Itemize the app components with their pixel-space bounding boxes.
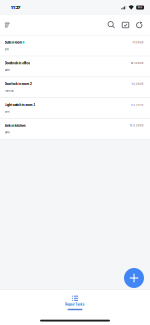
button[interactable]: Doorknob in office [0,56,150,77]
button[interactable]: Sort [1,15,14,35]
staticText: 18.1.2025 [131,61,144,64]
staticText: Repair Tasks [65,303,85,306]
button[interactable]: Sink in kitchen [0,119,150,140]
button[interactable]: Refresh [132,15,146,35]
button[interactable]: Door lock in room 2 [0,77,150,98]
button[interactable]: Select [118,15,132,35]
button[interactable]: Light switch in room 3 [0,98,150,119]
staticText: 7.1.2025 [132,41,144,44]
staticText: Sink in kitchen [5,124,26,127]
staticText: Sink in kitchen [5,124,26,127]
staticText: Jane [5,110,10,113]
staticText: Jim [5,48,8,51]
staticText: 11:27 [11,5,20,10]
staticText: Jane [5,68,10,71]
staticText: 11:27 [11,5,20,10]
staticText: Bulb in room 1 [5,41,24,44]
staticText: 18.1.2025 [131,61,144,64]
staticText: 13.2.2025 [130,124,144,127]
staticText: 1.2.2025 [131,82,144,85]
staticText: Light switch in room 3 [5,103,35,107]
staticText: 13.2.2025 [130,124,144,127]
staticText: Doorknob in office [5,61,30,65]
staticText: Bulb in room 1 [5,41,24,44]
staticText: Jane [5,68,10,71]
staticText: Door lock in room 2 [5,82,32,86]
staticText: Hannah [5,89,14,92]
button[interactable]: Add task [124,268,144,288]
button[interactable]: Repair Tasks [0,296,150,310]
staticText: Hannah [5,89,14,92]
staticText: Jane [5,110,10,113]
staticText: 11.2.2025 [131,103,144,106]
staticText: 7.1.2025 [132,41,144,44]
button[interactable]: Search [104,15,118,35]
staticText: Jane [5,131,10,134]
staticText: Jane [5,131,10,134]
staticText: Doorknob in office [5,61,30,65]
staticText: Jim [5,48,8,51]
staticText: Light switch in room 3 [5,103,35,107]
staticText: 100 [138,6,143,9]
staticText: 1.2.2025 [131,82,144,85]
staticText: Door lock in room 2 [5,82,32,86]
button[interactable]: Bulb in room 1 [0,36,150,56]
staticText: Repair Tasks [65,303,85,306]
staticText: 11.2.2025 [131,103,144,106]
